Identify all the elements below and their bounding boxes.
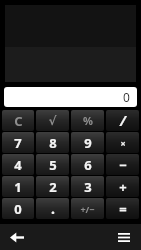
button[interactable]: 9 <box>71 132 104 153</box>
button[interactable]: Back <box>0 224 34 250</box>
staticText: − <box>119 156 127 174</box>
button[interactable]: 1 <box>2 176 34 197</box>
button[interactable]: 3 <box>71 176 104 197</box>
button[interactable]: . <box>36 198 69 219</box>
staticText: 9 <box>84 134 92 152</box>
staticText: 8 <box>49 134 57 152</box>
button[interactable]: +/− <box>71 198 104 219</box>
button[interactable]: % <box>71 110 104 131</box>
staticText: / <box>120 111 126 130</box>
button[interactable]: / <box>106 110 139 131</box>
staticText: . <box>51 199 55 218</box>
button[interactable]: √ <box>36 110 69 131</box>
staticText: √ <box>48 114 57 128</box>
staticText: C <box>14 112 23 130</box>
button[interactable]: 6 <box>71 154 104 175</box>
staticText: = <box>119 200 127 218</box>
button[interactable]: 4 <box>2 154 34 175</box>
staticText: +/− <box>80 203 95 215</box>
button[interactable]: = <box>106 198 139 219</box>
staticText: 0 <box>123 89 130 105</box>
button[interactable]: × <box>106 132 139 153</box>
staticText: 5 <box>49 156 57 174</box>
button[interactable]: 2 <box>36 176 69 197</box>
staticText: 0 <box>14 200 22 218</box>
staticText: 4 <box>14 156 22 174</box>
button[interactable]: C <box>2 110 34 131</box>
button[interactable]: 0 <box>2 198 34 219</box>
staticText: + <box>119 178 127 196</box>
staticText: 7 <box>14 134 22 152</box>
staticText: 6 <box>84 156 92 174</box>
button[interactable]: Menu <box>107 224 141 250</box>
button[interactable]: − <box>106 154 139 175</box>
button[interactable]: 0 <box>4 87 137 107</box>
button[interactable]: 8 <box>36 132 69 153</box>
button[interactable]: 5 <box>36 154 69 175</box>
staticText: × <box>120 137 126 149</box>
staticText: 1 <box>14 178 22 196</box>
staticText: 2 <box>49 178 57 196</box>
staticText: % <box>83 113 93 128</box>
button[interactable]: + <box>106 176 139 197</box>
button[interactable]: 7 <box>2 132 34 153</box>
staticText: 3 <box>84 178 92 196</box>
